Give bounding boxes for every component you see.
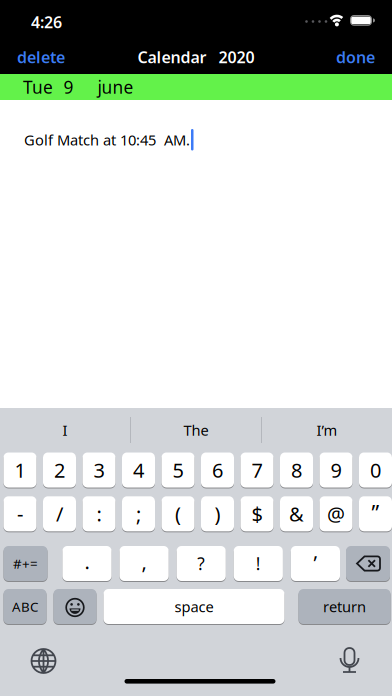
staticText: 4:26 bbox=[31, 11, 62, 33]
staticText: ” bbox=[371, 499, 379, 527]
staticText: Tue bbox=[23, 75, 53, 98]
button[interactable]: @ bbox=[319, 496, 352, 531]
staticText: 9 bbox=[330, 457, 341, 483]
button[interactable]: ” bbox=[359, 496, 392, 531]
staticText: 3 bbox=[93, 457, 104, 483]
button[interactable]: The bbox=[131, 410, 261, 450]
staticText: ? bbox=[197, 552, 205, 575]
staticText: Golf Match at 10:45 AM. bbox=[24, 130, 190, 149]
button[interactable]: ABC bbox=[3, 589, 46, 624]
staticText: ’ bbox=[313, 549, 317, 576]
staticText: delete bbox=[17, 46, 65, 68]
staticText: return bbox=[323, 597, 366, 616]
button[interactable]: , bbox=[119, 546, 169, 581]
staticText: 4 bbox=[133, 457, 144, 483]
button[interactable]: / bbox=[43, 496, 76, 531]
button[interactable]: : bbox=[82, 496, 115, 531]
button[interactable]: ! bbox=[234, 546, 283, 581]
button[interactable]: 1 bbox=[3, 452, 36, 487]
button[interactable]: $ bbox=[240, 496, 273, 531]
button[interactable]: 4 bbox=[122, 452, 155, 487]
button[interactable]: 8 bbox=[280, 452, 313, 487]
button[interactable]: I’m bbox=[262, 410, 392, 450]
button[interactable]: #+= bbox=[3, 546, 47, 581]
staticText: I bbox=[62, 420, 67, 440]
button[interactable]: ) bbox=[201, 496, 234, 531]
staticText: I’m bbox=[316, 420, 337, 440]
staticText: Calendar 2020 bbox=[137, 46, 254, 68]
staticText: ; bbox=[136, 500, 141, 527]
button[interactable]: Delete bbox=[346, 546, 390, 581]
staticText: 1 bbox=[14, 457, 25, 483]
staticText: @ bbox=[327, 500, 345, 527]
staticText: , bbox=[142, 548, 147, 575]
staticText: #+= bbox=[13, 555, 38, 572]
staticText: / bbox=[56, 500, 63, 527]
button[interactable]: 9 bbox=[319, 452, 352, 487]
button[interactable]: ? bbox=[177, 546, 226, 581]
staticText: 5 bbox=[172, 457, 183, 483]
button[interactable]: . bbox=[62, 546, 112, 581]
staticText: 8 bbox=[291, 457, 302, 483]
staticText: - bbox=[17, 500, 23, 527]
staticText: ) bbox=[214, 500, 220, 527]
staticText: 7 bbox=[251, 457, 262, 483]
button[interactable]: ( bbox=[161, 496, 194, 531]
staticText: $ bbox=[251, 500, 262, 527]
button[interactable]: Emoji bbox=[53, 589, 96, 624]
staticText: The bbox=[183, 420, 208, 440]
staticText: space bbox=[174, 597, 213, 616]
button[interactable]: 5 bbox=[161, 452, 194, 487]
button[interactable]: 3 bbox=[82, 452, 115, 487]
button[interactable]: - bbox=[3, 496, 36, 531]
button[interactable]: 6 bbox=[201, 452, 234, 487]
button[interactable]: done bbox=[336, 40, 375, 74]
button[interactable]: ’ bbox=[291, 546, 340, 581]
button[interactable]: I bbox=[0, 410, 130, 450]
staticText: : bbox=[96, 500, 101, 527]
staticText: ( bbox=[175, 500, 181, 527]
staticText: 9 bbox=[63, 75, 73, 98]
staticText: ABC bbox=[12, 598, 38, 615]
button[interactable]: Next keyboard bbox=[16, 646, 72, 692]
staticText: done bbox=[336, 46, 375, 68]
button[interactable]: 2 bbox=[43, 452, 76, 487]
button[interactable]: delete bbox=[17, 40, 65, 74]
staticText: 6 bbox=[212, 457, 223, 483]
staticText: 2 bbox=[54, 457, 65, 483]
staticText: 0 bbox=[370, 457, 381, 483]
button[interactable]: 7 bbox=[240, 452, 273, 487]
staticText: june bbox=[97, 75, 133, 98]
button[interactable]: 0 bbox=[359, 452, 392, 487]
button[interactable]: return bbox=[298, 589, 390, 624]
staticText: ! bbox=[256, 552, 261, 575]
button[interactable]: space bbox=[103, 589, 284, 624]
button[interactable]: & bbox=[280, 496, 313, 531]
staticText: . bbox=[84, 548, 89, 575]
button[interactable]: Dictate bbox=[322, 646, 378, 692]
staticText: & bbox=[289, 500, 304, 527]
button[interactable]: ; bbox=[122, 496, 155, 531]
